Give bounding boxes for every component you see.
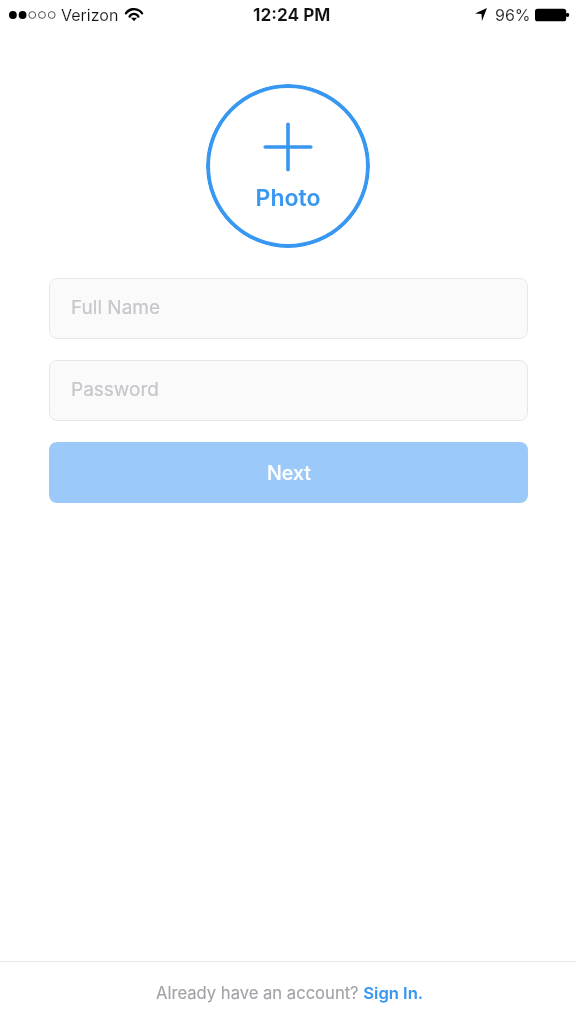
button[interactable]: Next xyxy=(49,442,528,503)
staticText: Password xyxy=(71,378,159,401)
button[interactable]: Add photo xyxy=(206,84,370,248)
staticText: Verizon xyxy=(61,5,119,24)
staticText: Full Name xyxy=(71,296,161,319)
staticText: 12:24 PM xyxy=(253,4,331,25)
button[interactable]: Password xyxy=(49,360,528,421)
button[interactable]: Full Name xyxy=(49,278,528,339)
staticText: Photo xyxy=(206,184,370,212)
staticText: 96% xyxy=(495,5,531,24)
staticText: Already have an account? Sign In. xyxy=(156,983,424,1003)
staticText: Next xyxy=(267,461,311,485)
button[interactable]: Already have an account? Sign In. xyxy=(0,962,576,1024)
